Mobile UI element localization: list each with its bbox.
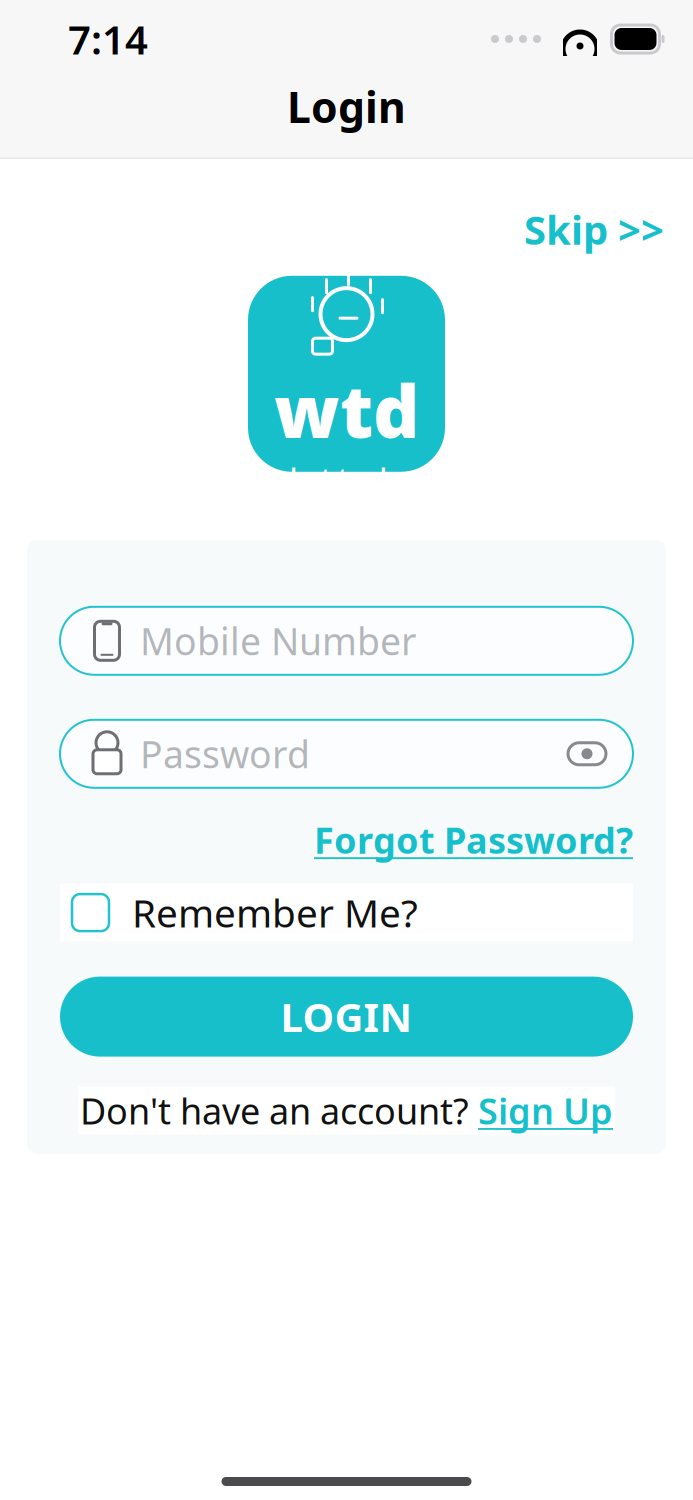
staticText: LOGIN — [280, 990, 412, 1043]
staticText: Login — [287, 78, 406, 135]
button[interactable]: Don't have an account? — [78, 1087, 615, 1134]
staticText: wtd — [274, 362, 419, 458]
staticText: Forgot Password? — [314, 816, 633, 864]
staticText: Skip >> — [524, 203, 664, 256]
staticText: 7:14 — [68, 12, 148, 65]
staticText: what to do... — [269, 460, 424, 493]
staticText: Don't have an account? — [80, 1087, 478, 1134]
staticText: Remember Me? — [132, 887, 418, 938]
button[interactable]: Show password — [567, 740, 607, 768]
button[interactable]: Remember Me? — [60, 884, 633, 942]
button[interactable]: LOGIN — [60, 977, 633, 1057]
staticText: Mobile Number — [140, 616, 416, 666]
staticText: Sign Up — [478, 1087, 613, 1134]
button[interactable]: Forgot Password? — [60, 816, 633, 864]
staticText: Password — [140, 729, 310, 779]
button[interactable]: Skip >> — [516, 197, 672, 262]
